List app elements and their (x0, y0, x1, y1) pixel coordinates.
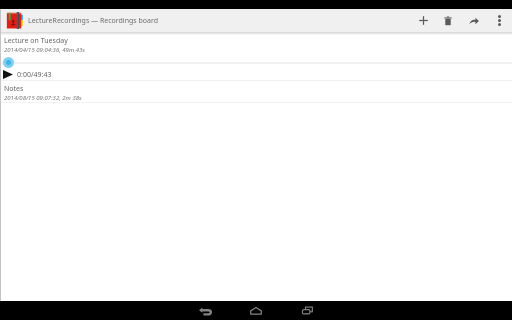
staticText: LectureRecordings — Recordings board (28, 16, 158, 26)
button[interactable]: Play recording (0, 64, 512, 80)
button[interactable]: Back (193, 301, 217, 320)
staticText: Lecture on Tuesday (4, 36, 68, 46)
staticText: 2014/08/15 09:07:32, 2m 38s (4, 94, 82, 102)
button[interactable]: Share (462, 9, 486, 32)
staticText: 2014/04/15 09:04:36, 49m 43s (4, 46, 85, 54)
staticText: 0:00/49:43 (17, 70, 52, 80)
staticText: Notes (4, 84, 24, 94)
button[interactable]: LectureRecordings — Recordings board (0, 9, 399, 32)
button[interactable]: Add (411, 9, 435, 32)
button[interactable]: Home (244, 301, 268, 320)
button[interactable]: Recent apps (295, 301, 319, 320)
button[interactable]: Lecture on Tuesday (0, 35, 512, 62)
button[interactable]: Seek position (3, 57, 14, 68)
button[interactable]: Notes (0, 82, 512, 103)
button[interactable]: Delete (436, 9, 460, 32)
button[interactable]: More options (487, 9, 511, 32)
